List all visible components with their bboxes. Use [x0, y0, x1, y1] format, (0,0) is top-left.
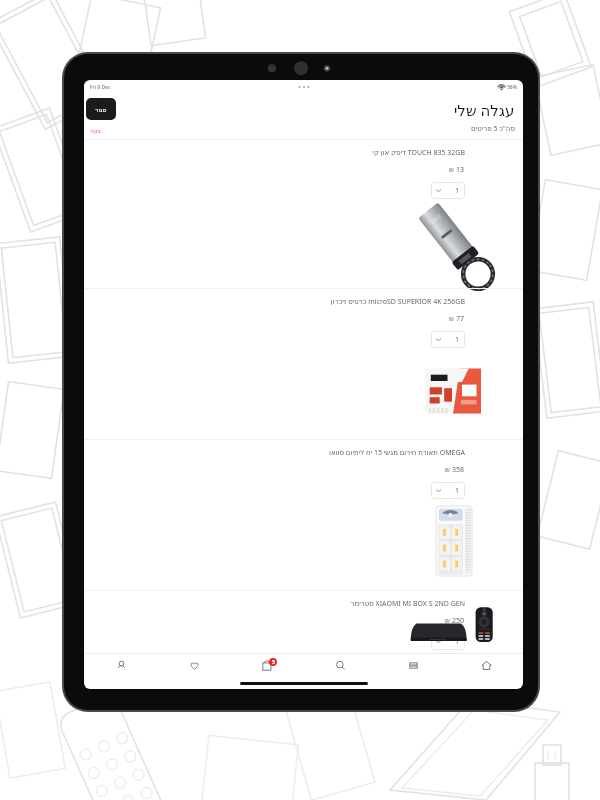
button[interactable]: 1 [431, 633, 465, 650]
staticText: סה"כ 5 פריטים [471, 124, 515, 134]
staticText: ₪ [445, 466, 450, 474]
button[interactable]: סטרימר XIAOMI MI BOX S 2ND GEN [84, 591, 523, 653]
button[interactable]: Categories [377, 653, 450, 678]
staticText: 77 [456, 314, 465, 324]
staticText: 36% [507, 84, 517, 91]
button[interactable]: Home [450, 653, 523, 678]
staticText: 1 [455, 335, 460, 345]
staticText: 5 [272, 659, 275, 666]
staticText: עגלה שלי [454, 100, 515, 120]
button[interactable]: כרטיס זיכרון microSD SUPERIOR 4K 256GB [84, 289, 523, 439]
button[interactable]: 1 [431, 482, 465, 499]
button[interactable]: 1 [431, 182, 465, 199]
staticText: 13 [456, 165, 465, 175]
button[interactable]: Account [84, 653, 158, 678]
button[interactable]: 1 [431, 331, 465, 348]
staticText: 358 [452, 465, 465, 475]
staticText: 1 [455, 186, 460, 196]
staticText: Fri 8 Dec [90, 84, 111, 91]
button[interactable]: סגור [86, 98, 116, 120]
staticText: 250 [452, 616, 465, 626]
staticText: סגור [95, 106, 107, 113]
staticText: 1 [455, 637, 460, 647]
button[interactable]: נקה [90, 127, 101, 134]
staticText: ₪ [449, 315, 454, 323]
staticText: 1 [455, 486, 460, 496]
staticText: סטרימר XIAOMI MI BOX S 2ND GEN [350, 599, 465, 609]
staticText: ₪ [445, 617, 450, 625]
staticText: ₪ [449, 166, 454, 174]
button[interactable]: Search [304, 653, 377, 678]
button[interactable]: דיסק און קי TOUCH 835 32GB [84, 140, 523, 288]
staticText: תאורת חירום מגשי 15 יח ליתיום סוואו OMEG… [329, 448, 465, 458]
button[interactable]: Favourites [158, 653, 231, 678]
staticText: דיסק און קי TOUCH 835 32GB [372, 148, 465, 158]
button[interactable]: תאורת חירום מגשי 15 יח ליתיום סוואו OMEG… [84, 440, 523, 590]
staticText: כרטיס זיכרון microSD SUPERIOR 4K 256GB [330, 297, 465, 307]
button[interactable]: Cart [231, 653, 304, 678]
